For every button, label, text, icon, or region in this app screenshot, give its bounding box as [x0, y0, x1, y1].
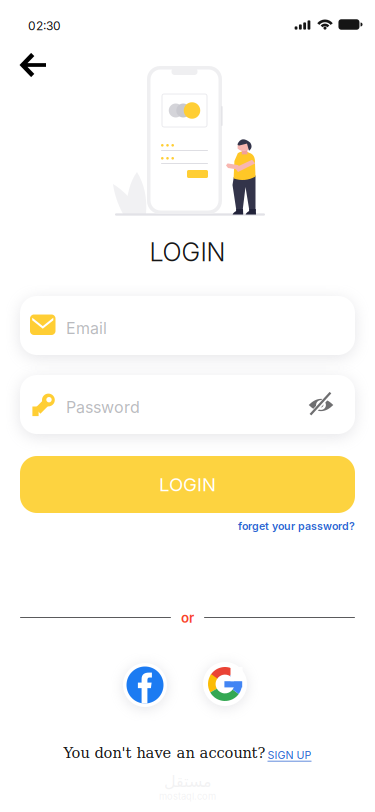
staticText: You don't have an account?: [63, 744, 265, 762]
staticText: SIGN UP: [267, 749, 311, 761]
staticText: LOGIN: [159, 473, 216, 496]
staticText: Email: [66, 318, 107, 338]
staticText: forget your password?: [238, 519, 355, 532]
button[interactable]: forget your password?: [238, 519, 355, 532]
button[interactable]: Back: [8, 44, 58, 86]
staticText: مستقل: [163, 772, 211, 791]
button[interactable]: Email: [20, 296, 355, 355]
button[interactable]: SIGN UP: [267, 749, 311, 761]
staticText: 02:30: [28, 19, 61, 33]
button[interactable]: Sign in with Facebook: [123, 663, 167, 707]
staticText: mostaql.com: [159, 791, 216, 802]
button[interactable]: Password: [20, 375, 355, 434]
button[interactable]: Show password: [303, 391, 339, 419]
button[interactable]: Sign in with Google: [203, 662, 247, 706]
staticText: Password: [66, 397, 140, 417]
staticText: LOGIN: [149, 237, 225, 267]
staticText: or: [181, 610, 194, 626]
button[interactable]: LOGIN: [20, 456, 355, 513]
